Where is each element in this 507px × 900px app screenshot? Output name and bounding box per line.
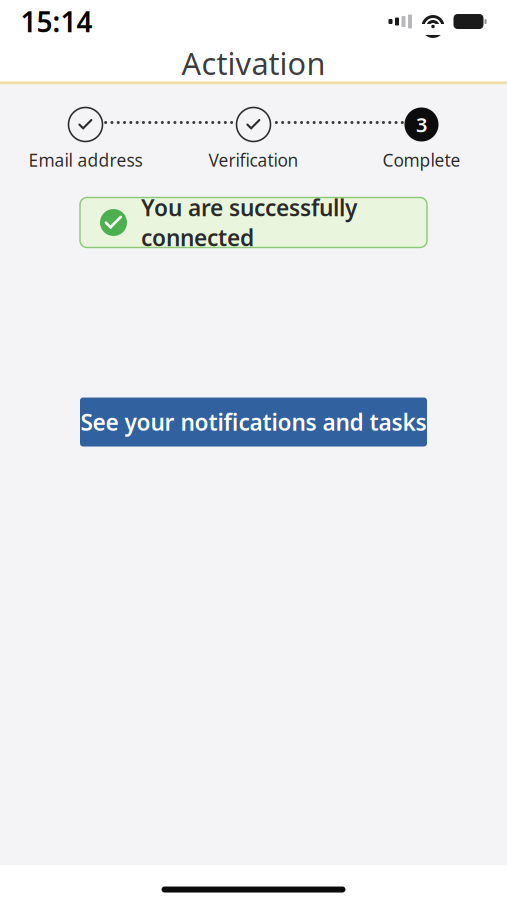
staticText: Verification — [208, 148, 298, 171]
staticText: Activation — [181, 43, 325, 83]
staticText: See your notifications and tasks — [80, 407, 426, 437]
staticText: Email address — [28, 148, 142, 171]
staticText: You are successfully connected — [141, 192, 357, 253]
staticText: 3 — [416, 111, 427, 138]
staticText: 15:14 — [20, 3, 92, 40]
button[interactable]: See your notifications and tasks — [80, 397, 427, 446]
staticText: Complete — [382, 148, 460, 171]
